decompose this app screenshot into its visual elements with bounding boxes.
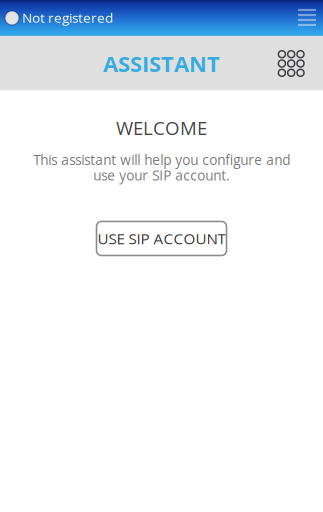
- staticText: This assistant will help you configure a…: [33, 150, 290, 184]
- button[interactable]: Menu: [295, 6, 319, 29]
- button[interactable]: Dial pad: [276, 49, 306, 78]
- staticText: ASSISTANT: [103, 49, 220, 78]
- button[interactable]: USE SIP ACCOUNT: [96, 221, 226, 255]
- staticText: USE SIP ACCOUNT: [97, 228, 225, 249]
- staticText: Not registered: [22, 8, 113, 27]
- staticText: WELCOME: [116, 115, 207, 140]
